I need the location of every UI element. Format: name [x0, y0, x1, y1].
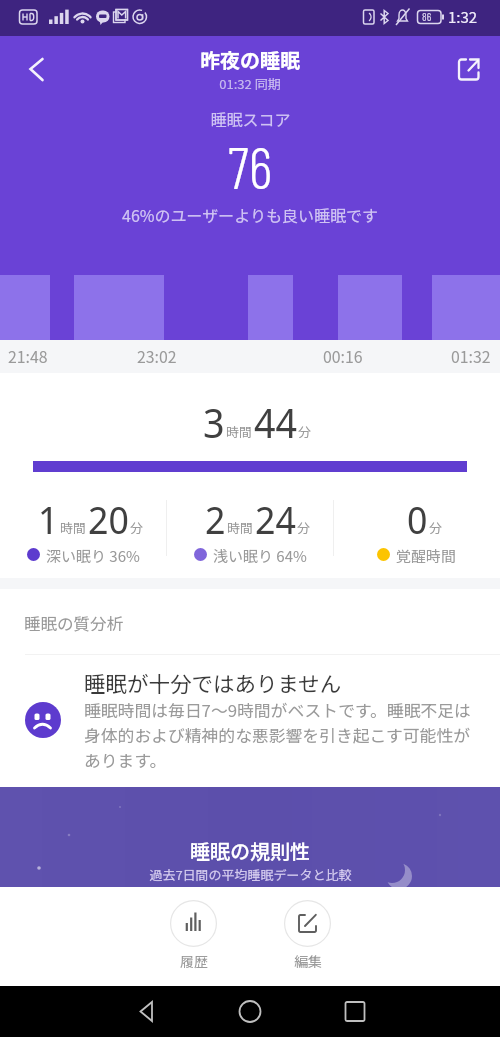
staticText: 23:02	[137, 345, 177, 368]
staticText: 睡眠スコア	[210, 107, 291, 130]
staticText: 睡眠の質分析	[24, 611, 123, 635]
staticText: 浅い眠り 64%	[213, 545, 307, 563]
staticText: 睡眠時間は毎日7〜9時間がベストです。睡眠不足は身体的および精神的な悪影響を引き…	[84, 698, 484, 772]
staticText: 00:16	[323, 345, 363, 368]
staticText: 0	[407, 493, 428, 545]
staticText: 44	[254, 395, 297, 449]
button[interactable]: 睡眠の規則性	[0, 787, 500, 887]
staticText: 24	[255, 493, 296, 545]
staticText: 01:32	[451, 345, 491, 368]
staticText: 3	[203, 395, 225, 449]
staticText: 1	[38, 493, 59, 545]
staticText: 1:32	[448, 6, 478, 28]
staticText: 履歴	[180, 951, 208, 971]
staticText: 20	[88, 493, 129, 545]
staticText: 深い眠り 36%	[46, 545, 140, 563]
staticText: 46%のユーザーよりも良い睡眠です	[122, 203, 378, 226]
staticText: 01:32 同期	[219, 74, 281, 93]
staticText: 時間	[60, 518, 87, 537]
staticText: 分	[297, 518, 311, 537]
staticText: 76	[228, 131, 272, 201]
staticText: 2	[205, 493, 226, 545]
staticText: 時間	[226, 422, 253, 441]
staticText: 86	[422, 10, 432, 23]
staticText: 覚醒時間	[396, 545, 457, 563]
staticText: 分	[298, 422, 312, 441]
staticText: 時間	[227, 518, 254, 537]
staticText: 睡眠が十分ではありません	[84, 667, 342, 698]
button[interactable]: 0	[334, 493, 500, 563]
staticText: 睡眠の規則性	[190, 836, 310, 865]
staticText: 昨夜の睡眠	[200, 45, 300, 74]
staticText: 編集	[294, 951, 322, 971]
button[interactable]: Back	[12, 45, 60, 93]
staticText: 分	[130, 518, 144, 537]
staticText: 過去7日間の平均睡眠データと比較	[149, 865, 352, 884]
button[interactable]: Open in new window	[446, 45, 494, 93]
staticText: 分	[429, 518, 443, 537]
button[interactable]: 2	[167, 493, 333, 563]
button[interactable]: 履歴	[170, 900, 217, 971]
staticText: 21:48	[8, 345, 48, 368]
button[interactable]: 1	[0, 493, 166, 563]
button[interactable]: 編集	[284, 900, 331, 971]
